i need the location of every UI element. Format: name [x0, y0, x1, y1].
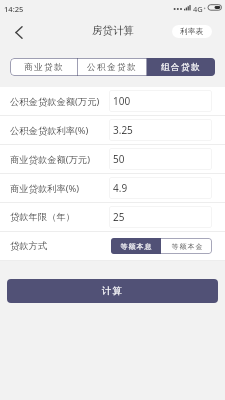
- button[interactable]: 贷款方式: [0, 232, 109, 260]
- button[interactable]: 商业贷款: [10, 58, 77, 76]
- staticText: 计算: [102, 285, 124, 297]
- staticText: 公积金贷款利率(%): [10, 124, 89, 137]
- button[interactable]: 计算: [7, 279, 218, 303]
- staticText: 商业贷款利率(%): [10, 182, 80, 195]
- button[interactable]: 组合贷款: [147, 58, 215, 76]
- button[interactable]: 25: [109, 206, 212, 228]
- staticText: 3.25: [113, 123, 133, 137]
- staticText: 等额本金: [171, 242, 203, 251]
- button[interactable]: 商业贷款利率(%): [0, 174, 109, 202]
- staticText: 利率表: [180, 26, 204, 36]
- staticText: 4.9: [113, 181, 128, 195]
- button[interactable]: 100: [109, 90, 212, 112]
- staticText: 房贷计算: [92, 24, 134, 37]
- button[interactable]: 等额本息: [111, 238, 161, 254]
- button[interactable]: 商业贷款金额(万元): [0, 145, 109, 173]
- staticText: 公积金贷款: [87, 62, 137, 73]
- button[interactable]: 公积金贷款金额(万元): [0, 87, 109, 115]
- button[interactable]: 利率表: [172, 25, 212, 38]
- staticText: 25: [113, 210, 125, 224]
- button[interactable]: 4.9: [109, 177, 212, 199]
- staticText: 4G: [193, 4, 203, 14]
- button[interactable]: 贷款年限（年）: [0, 203, 109, 231]
- staticText: 100: [113, 94, 131, 108]
- button[interactable]: 50: [109, 148, 212, 170]
- button[interactable]: 等额本金: [161, 238, 212, 254]
- staticText: 组合贷款: [161, 62, 201, 73]
- staticText: 贷款年限（年）: [10, 211, 76, 223]
- button[interactable]: 3.25: [109, 119, 212, 141]
- staticText: 商业贷款金额(万元): [10, 153, 90, 166]
- staticText: 14:25: [4, 4, 24, 14]
- staticText: 50: [113, 152, 125, 166]
- button[interactable]: 公积金贷款利率(%): [0, 116, 109, 144]
- button[interactable]: 公积金贷款: [78, 58, 146, 76]
- staticText: 商业贷款: [24, 62, 64, 73]
- button[interactable]: Back: [6, 19, 32, 45]
- staticText: 贷款方式: [10, 240, 48, 252]
- staticText: 公积金贷款金额(万元): [10, 95, 100, 108]
- staticText: 等额本息: [120, 242, 152, 251]
